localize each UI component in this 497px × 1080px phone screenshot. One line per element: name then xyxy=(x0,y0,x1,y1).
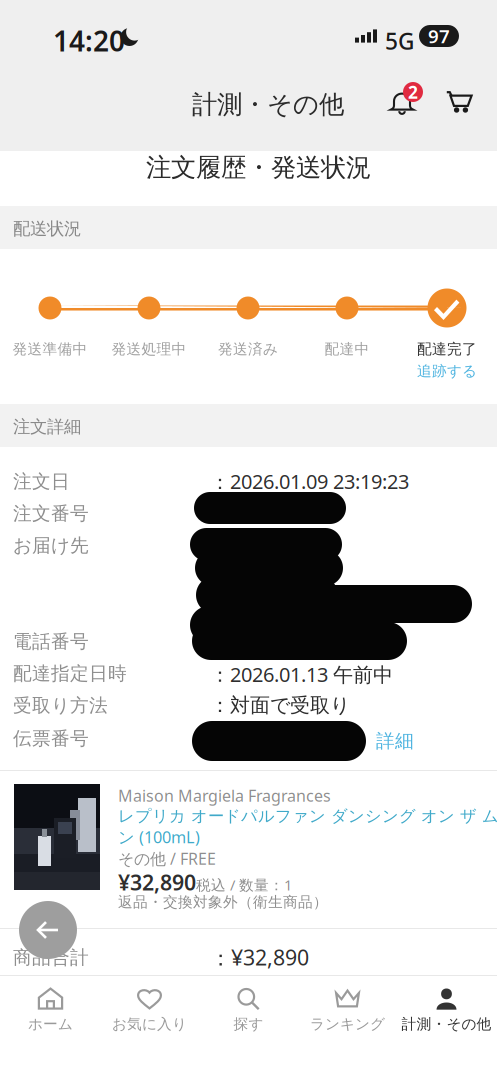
button[interactable]: ホーム xyxy=(1,980,100,1040)
staticText: 計測・その他 xyxy=(192,89,344,120)
staticText: その他 / FREE xyxy=(118,848,216,869)
staticText: 注文履歴・発送状況 xyxy=(146,152,371,183)
staticText: 返品・交換対象外（衛生商品） xyxy=(118,893,328,911)
button[interactable]: お気に入り xyxy=(100,980,199,1040)
staticText: 注文詳細 xyxy=(13,416,81,437)
staticText: 発送済み xyxy=(218,340,278,358)
staticText: 配送状況 xyxy=(13,218,81,239)
button[interactable]: 計測・その他 xyxy=(397,980,496,1040)
staticText: ホーム xyxy=(28,1015,73,1033)
staticText: 計測・その他 xyxy=(401,1015,491,1033)
button[interactable]: 戻る xyxy=(19,901,77,959)
staticText: 2 xyxy=(408,80,418,103)
staticText: ランキング xyxy=(310,1015,385,1033)
staticText: 探す xyxy=(233,1015,263,1033)
staticText: お気に入り xyxy=(112,1015,187,1033)
staticText: 注文日 xyxy=(13,470,70,493)
staticText: Maison Margiela Fragrances xyxy=(118,785,331,806)
staticText: 受取り方法 xyxy=(13,694,108,717)
button[interactable]: ランキング xyxy=(298,980,397,1040)
staticText: 伝票番号 xyxy=(13,727,89,750)
button[interactable]: 探す xyxy=(199,980,298,1040)
staticText: ン (100mL) xyxy=(118,826,200,848)
staticText: レプリカ オードパルファン ダンシング オン ザ ムー xyxy=(118,806,497,826)
button[interactable]: お知らせ xyxy=(384,80,424,124)
staticText: ：2026.01.13 午前中 xyxy=(210,661,393,688)
staticText: ：2026.01.09 23:19:23 xyxy=(210,468,409,495)
staticText: ：¥32,890 xyxy=(210,943,309,971)
staticText: 配達指定日時 xyxy=(13,662,127,685)
staticText: 配達中 xyxy=(324,340,369,358)
staticText: 発送処理中 xyxy=(111,340,186,358)
staticText: 14:20 xyxy=(53,22,125,59)
staticText: お届け先 xyxy=(13,534,89,557)
staticText: 商品合計 xyxy=(13,946,89,969)
staticText: 税込 / 数量：1 xyxy=(196,875,292,894)
staticText: ¥32,890 xyxy=(118,868,196,896)
button[interactable]: 追跡する xyxy=(402,362,492,380)
staticText: 5G xyxy=(385,26,414,56)
staticText: 注文番号 xyxy=(13,502,89,525)
staticText: 97 xyxy=(428,24,450,48)
staticText: 発送準備中 xyxy=(12,340,87,358)
staticText: 追跡する xyxy=(417,362,477,380)
button[interactable]: カート xyxy=(440,80,480,124)
staticText: 詳細 xyxy=(376,729,414,752)
staticText: ：対面で受取り xyxy=(210,693,350,718)
staticText: 配達完了 xyxy=(417,340,477,358)
button[interactable]: 詳細 xyxy=(376,729,414,753)
staticText: 電話番号 xyxy=(13,630,89,653)
